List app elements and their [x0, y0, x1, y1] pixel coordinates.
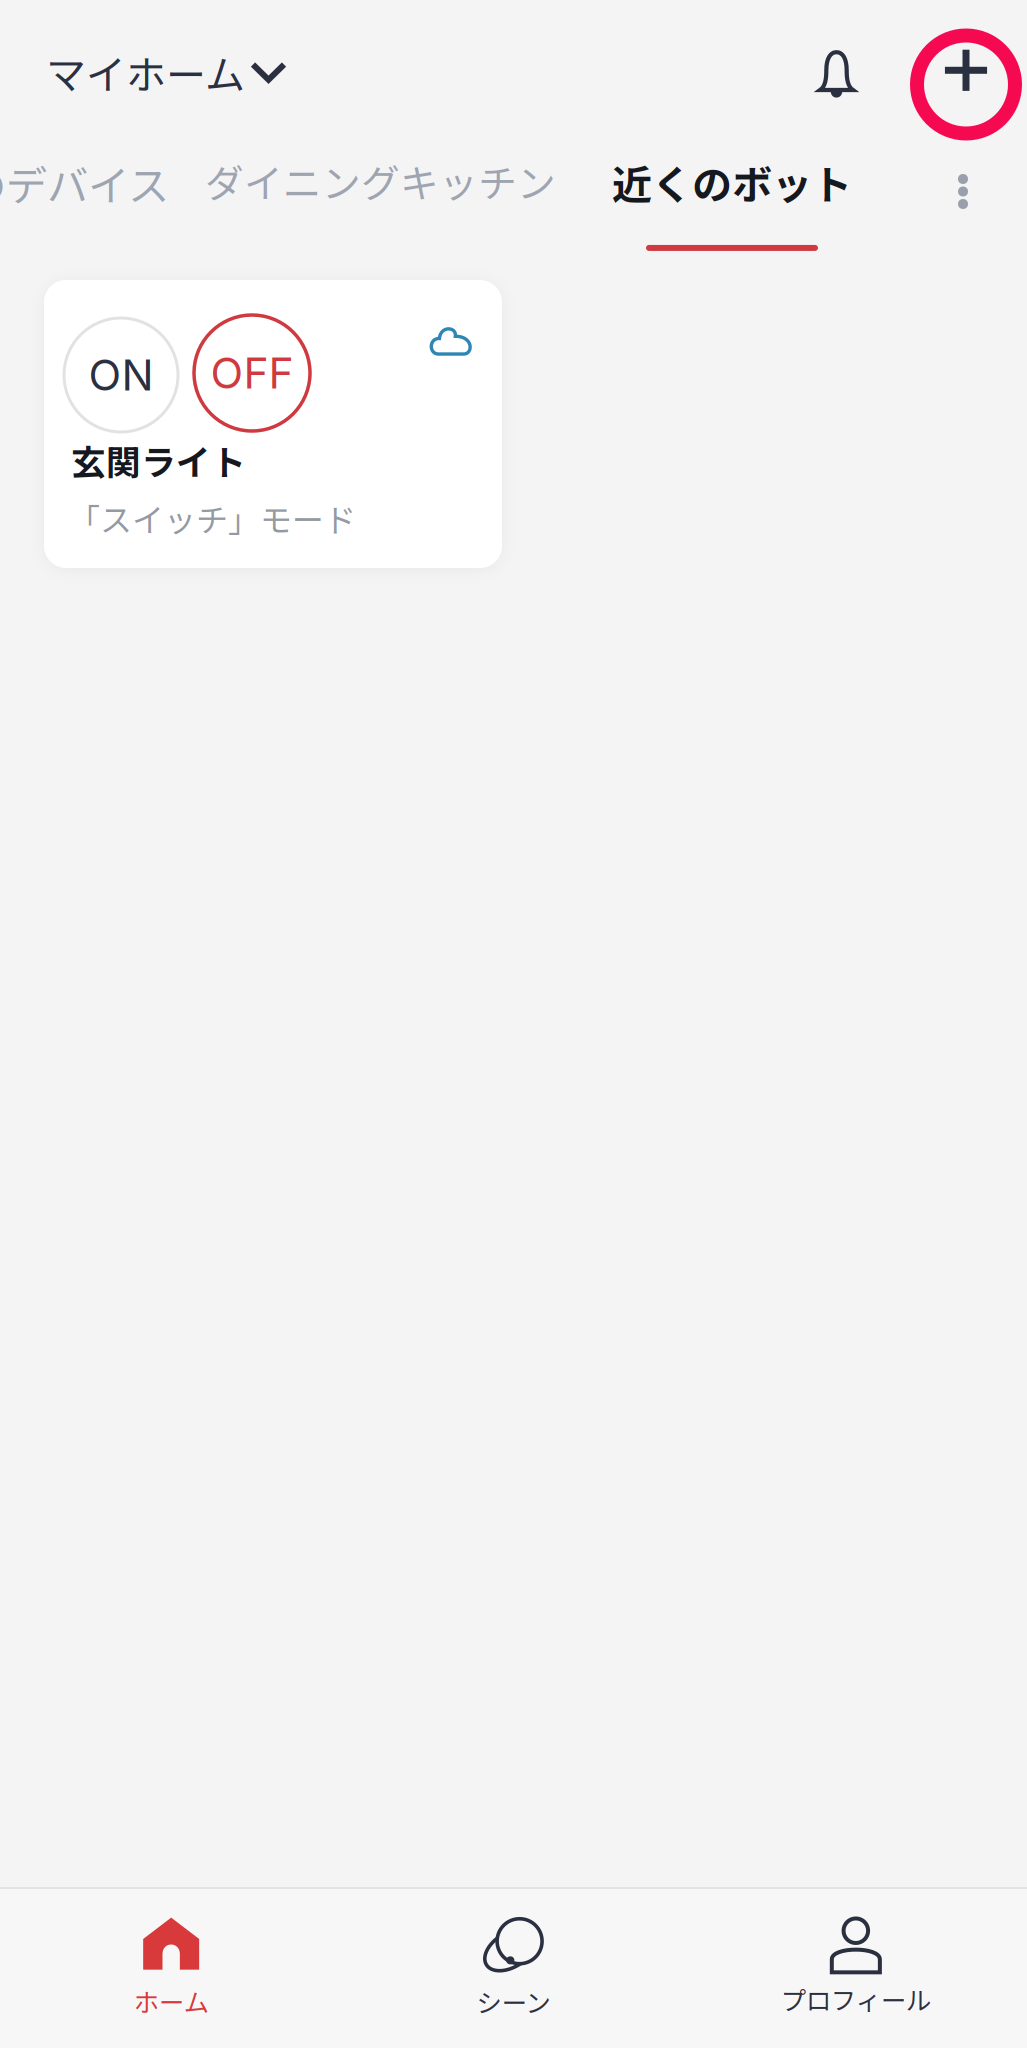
staticText: 近くのボット: [612, 153, 852, 211]
button[interactable]: マイホーム: [0, 21, 311, 123]
button[interactable]: ダイニングキッチン: [205, 149, 556, 213]
staticText: 「スイッチ」モード: [68, 495, 356, 541]
staticText: ON: [88, 349, 153, 401]
button[interactable]: Add device: [917, 10, 1017, 133]
staticText: プロフィール: [781, 1981, 931, 2017]
staticText: 玄関ライト: [71, 435, 246, 485]
staticText: ホーム: [134, 1983, 209, 2019]
button[interactable]: ホーム: [0, 1887, 342, 2048]
button[interactable]: のデバイス: [0, 149, 169, 217]
button[interactable]: シーン: [342, 1886, 685, 2048]
button[interactable]: プロフィール: [685, 1889, 1027, 2048]
button[interactable]: Notifications: [777, 24, 917, 119]
staticText: のデバイス: [0, 153, 169, 213]
staticText: ダイニングキッチン: [205, 153, 556, 209]
button[interactable]: More options: [910, 144, 1016, 209]
button[interactable]: ON: [44, 280, 502, 568]
button[interactable]: 近くのボット: [612, 149, 852, 251]
staticText: OFF: [210, 347, 293, 399]
staticText: シーン: [476, 1983, 550, 2020]
staticText: マイホーム: [46, 43, 245, 101]
